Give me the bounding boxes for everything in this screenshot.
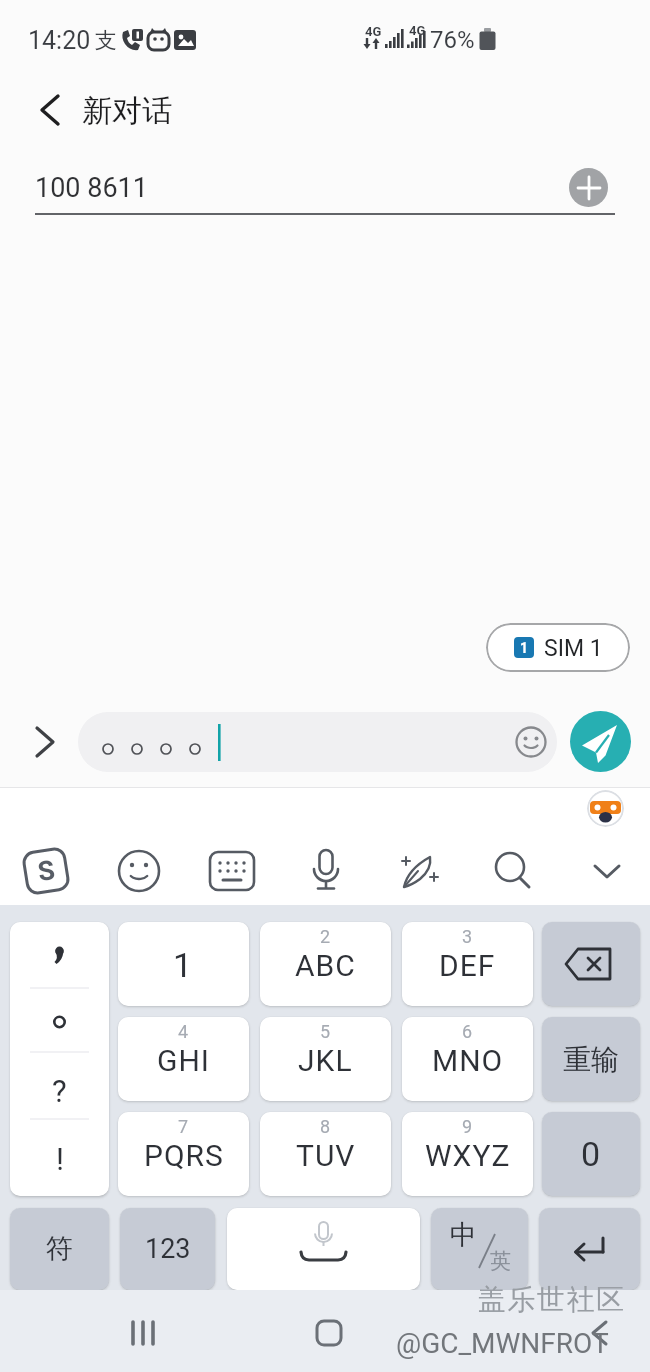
- button[interactable]: 6: [402, 1017, 533, 1101]
- button[interactable]: [30, 723, 60, 761]
- button[interactable]: [302, 847, 350, 895]
- staticText: DEF: [439, 948, 496, 983]
- button[interactable]: [78, 712, 557, 772]
- button[interactable]: 符: [10, 1208, 109, 1290]
- button[interactable]: 5: [260, 1017, 391, 1101]
- button[interactable]: 4: [118, 1017, 249, 1101]
- button[interactable]: [310, 1316, 346, 1350]
- staticText: 4G: [409, 23, 426, 37]
- staticText: 盖乐世社区: [478, 1282, 626, 1314]
- staticText: 6: [462, 1021, 473, 1042]
- staticText: 3: [462, 926, 473, 947]
- staticText: 8: [320, 1116, 331, 1137]
- staticText: 0: [581, 1134, 601, 1174]
- button[interactable]: [125, 1316, 161, 1350]
- staticText: 100 8611: [35, 172, 148, 204]
- button[interactable]: [583, 847, 631, 895]
- staticText: 支: [95, 27, 117, 53]
- staticText: 重输: [563, 1042, 619, 1077]
- staticText: TUV: [296, 1138, 356, 1173]
- staticText: 5: [320, 1021, 331, 1042]
- button[interactable]: 重输: [542, 1017, 640, 1101]
- button[interactable]: [396, 847, 444, 895]
- button[interactable]: [586, 1316, 616, 1350]
- button[interactable]: [208, 847, 256, 895]
- button[interactable]: [570, 711, 631, 772]
- button[interactable]: 中: [431, 1208, 528, 1290]
- button[interactable]: [115, 847, 163, 895]
- button[interactable]: 0: [542, 1112, 640, 1196]
- button[interactable]: 1: [118, 922, 249, 1006]
- button[interactable]: 9: [402, 1112, 533, 1196]
- staticText: 中: [450, 1218, 477, 1252]
- staticText: SIM 1: [544, 635, 603, 662]
- button[interactable]: [489, 847, 537, 895]
- button[interactable]: [542, 922, 640, 1006]
- button[interactable]: [38, 94, 64, 126]
- button[interactable]: [569, 168, 608, 207]
- staticText: 2: [320, 926, 331, 947]
- staticText: 76%: [430, 26, 475, 54]
- button[interactable]: 7: [118, 1112, 249, 1196]
- staticText: 7: [178, 1116, 189, 1137]
- staticText: MNO: [432, 1043, 504, 1078]
- staticText: 英: [490, 1248, 511, 1274]
- button[interactable]: [227, 1208, 420, 1290]
- staticText: 14:20: [28, 26, 91, 54]
- staticText: JKL: [298, 1043, 353, 1078]
- staticText: 新对话: [82, 92, 172, 128]
- button[interactable]: 123: [120, 1208, 215, 1290]
- staticText: ?: [52, 1073, 67, 1109]
- staticText: 4: [178, 1021, 189, 1042]
- staticText: 4G: [365, 24, 382, 38]
- staticText: WXYZ: [425, 1138, 511, 1173]
- staticText: @GC_MWNFROT: [396, 1327, 609, 1360]
- button[interactable]: S: [21, 846, 71, 896]
- staticText: 符: [46, 1232, 73, 1266]
- staticText: 123: [145, 1233, 191, 1265]
- button[interactable]: [539, 1208, 640, 1290]
- staticText: GHI: [157, 1043, 210, 1078]
- staticText: 1: [173, 945, 194, 985]
- staticText: PQRS: [144, 1138, 224, 1173]
- staticText: 9: [462, 1116, 473, 1137]
- staticText: S: [36, 854, 57, 888]
- staticText: ABC: [295, 948, 356, 983]
- button[interactable]: 2: [260, 922, 391, 1006]
- staticText: 1: [520, 640, 529, 656]
- button[interactable]: 3: [402, 922, 533, 1006]
- button[interactable]: ?: [10, 922, 109, 1196]
- staticText: !: [56, 1141, 64, 1177]
- button[interactable]: 8: [260, 1112, 391, 1196]
- button[interactable]: 1: [486, 623, 630, 672]
